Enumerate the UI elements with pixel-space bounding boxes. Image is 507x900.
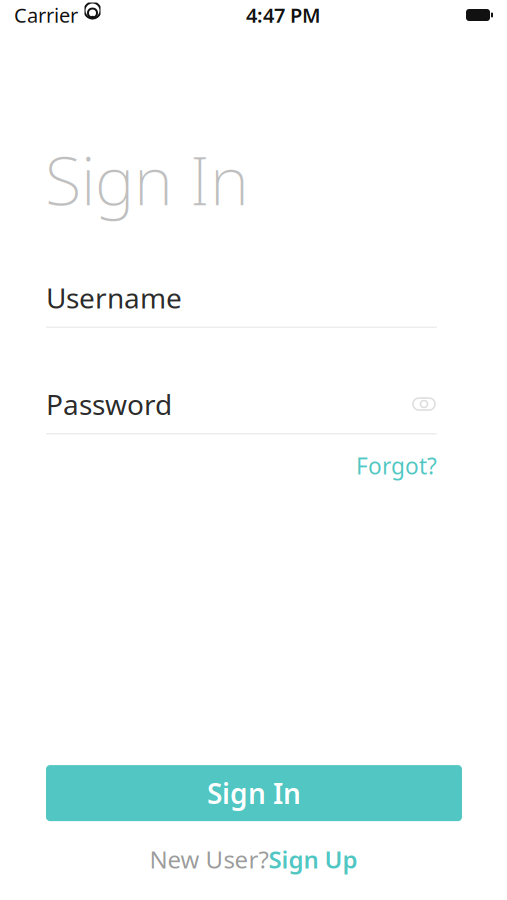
- button[interactable]: Forgot?: [356, 450, 437, 481]
- staticText: Sign In: [207, 774, 301, 812]
- staticText: Carrier: [14, 2, 78, 28]
- button[interactable]: Sign Up: [268, 843, 357, 875]
- staticText: Forgot?: [356, 450, 437, 481]
- button[interactable]: Show password: [411, 391, 437, 417]
- staticText: New User?: [149, 843, 268, 875]
- staticText: Sign In: [45, 135, 249, 223]
- staticText: 4:47 PM: [246, 2, 321, 28]
- button[interactable]: Sign In: [46, 765, 462, 821]
- staticText: Sign Up: [268, 843, 357, 875]
- staticText: Username: [46, 279, 182, 316]
- staticText: Password: [46, 385, 172, 423]
